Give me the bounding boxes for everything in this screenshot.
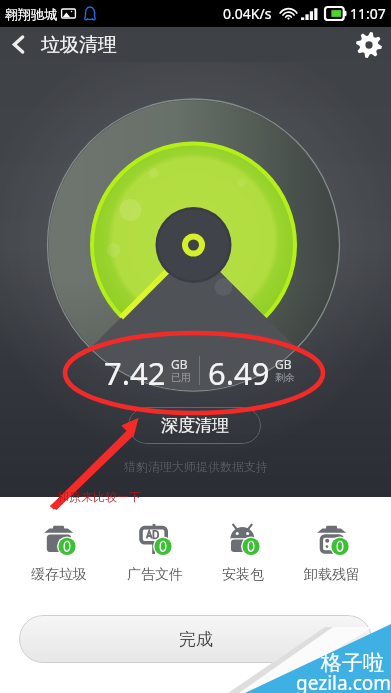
button[interactable]: 缓存垃圾 (23, 518, 95, 586)
button[interactable]: Settings (347, 27, 391, 62)
staticText: 深度清理 (161, 415, 229, 436)
button[interactable]: 深度清理 (128, 407, 261, 444)
staticText: 和原来比较一下 (57, 489, 141, 504)
staticText: 安装包 (222, 566, 264, 584)
staticText: 剩余 (275, 371, 295, 384)
staticText: 垃圾清理 (41, 33, 117, 57)
staticText: 格子啦 (321, 650, 384, 676)
staticText: 缓存垃圾 (31, 566, 87, 584)
staticText: 0.04K/s (223, 4, 272, 23)
button[interactable]: 安装包 (214, 518, 272, 586)
staticText: 广告文件 (127, 566, 183, 584)
button[interactable]: 完成 (19, 615, 372, 663)
button[interactable]: Back (0, 27, 36, 62)
staticText: GB (171, 356, 188, 372)
staticText: 已用 (171, 371, 191, 384)
staticText: 翱翔驰城 (5, 6, 57, 22)
staticText: 完成 (179, 629, 213, 650)
staticText: 猎豹清理大师提供数据支持 (124, 459, 268, 474)
staticText: GB (275, 356, 292, 372)
button[interactable]: 卸载残留 (296, 518, 368, 586)
button[interactable]: 广告文件 (119, 518, 191, 586)
staticText: 6.49 (208, 352, 270, 394)
staticText: 11:07 (350, 4, 386, 23)
staticText: 卸载残留 (304, 566, 360, 584)
staticText: 7.42 (104, 352, 166, 394)
staticText: gezila.com (296, 670, 391, 693)
